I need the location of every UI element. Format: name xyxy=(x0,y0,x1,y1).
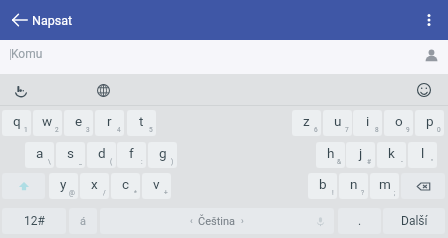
staticText: › xyxy=(241,216,244,227)
button[interactable]: e xyxy=(64,110,93,136)
staticText: ‹ xyxy=(190,216,193,227)
staticText: n xyxy=(350,176,358,192)
staticText: 12# xyxy=(24,214,45,228)
button[interactable]: Diacritics xyxy=(69,208,97,234)
button[interactable]: More options xyxy=(416,7,442,33)
button[interactable]: x xyxy=(80,173,109,199)
staticText: 8 xyxy=(375,126,379,134)
staticText: q xyxy=(13,113,21,129)
staticText: e xyxy=(75,113,83,129)
button[interactable]: w xyxy=(33,110,62,136)
staticText: f xyxy=(129,145,134,161)
button[interactable]: Clipboard xyxy=(10,78,34,102)
staticText: z xyxy=(303,113,310,129)
staticText: " xyxy=(431,158,434,166)
staticText: 1 xyxy=(24,126,28,134)
staticText: / xyxy=(103,189,106,197)
button[interactable]: Další xyxy=(383,208,445,234)
button[interactable]: y xyxy=(49,173,78,199)
staticText: d xyxy=(98,145,106,161)
button[interactable]: c xyxy=(111,173,140,199)
staticText: r xyxy=(107,113,112,129)
button[interactable]: Emoji xyxy=(412,78,436,102)
button[interactable]: m xyxy=(370,173,399,199)
staticText: Napsat xyxy=(32,13,73,28)
button[interactable]: d xyxy=(87,142,116,168)
staticText: c xyxy=(122,176,130,192)
staticText: 4 xyxy=(117,126,121,134)
staticText: . xyxy=(358,214,362,228)
staticText: \ xyxy=(48,158,51,166)
staticText: @ xyxy=(69,189,75,197)
button[interactable]: v xyxy=(142,173,171,199)
staticText: ; xyxy=(394,189,396,197)
button[interactable]: . xyxy=(338,208,381,234)
button[interactable]: a xyxy=(25,142,54,168)
staticText: l xyxy=(421,145,425,161)
staticText: i xyxy=(366,113,370,129)
staticText: t xyxy=(139,113,144,129)
staticText: : xyxy=(141,158,143,166)
button[interactable]: u xyxy=(323,110,352,136)
staticText: y xyxy=(60,176,67,192)
button[interactable]: ‹ xyxy=(100,208,334,234)
button[interactable]: 12# xyxy=(2,208,66,234)
staticText: x xyxy=(91,176,98,192)
staticText: _ xyxy=(79,158,82,166)
button[interactable]: g xyxy=(148,142,177,168)
staticText: s xyxy=(67,145,74,161)
staticText: v xyxy=(153,176,160,192)
button[interactable]: Add contact xyxy=(420,44,442,66)
staticText: w xyxy=(42,113,53,129)
button[interactable]: Language xyxy=(91,78,115,102)
button[interactable]: f xyxy=(117,142,146,168)
button[interactable]: s xyxy=(56,142,85,168)
staticText: 2 xyxy=(55,126,59,134)
staticText: b xyxy=(319,176,327,192)
button[interactable]: o xyxy=(384,110,413,136)
staticText: ! xyxy=(332,189,334,197)
button[interactable]: z xyxy=(292,110,321,136)
button[interactable]: n xyxy=(339,173,368,199)
staticText: m xyxy=(379,176,391,192)
staticText: u xyxy=(334,113,342,129)
staticText: g xyxy=(159,145,167,161)
staticText: - xyxy=(401,158,403,166)
staticText: ? xyxy=(361,189,365,197)
staticText: 7 xyxy=(345,126,349,134)
staticText: * xyxy=(134,189,137,197)
staticText: # xyxy=(367,158,372,166)
button[interactable]: l xyxy=(408,142,437,168)
staticText: p xyxy=(426,113,434,129)
staticText: 5 xyxy=(149,126,153,134)
staticText: k xyxy=(388,145,395,161)
staticText: ) xyxy=(171,158,174,166)
button[interactable]: j xyxy=(346,142,375,168)
staticText: + xyxy=(164,189,168,197)
staticText: Čeština xyxy=(198,215,236,228)
button[interactable]: b xyxy=(308,173,337,199)
button[interactable]: h xyxy=(316,142,345,168)
staticText: h xyxy=(327,145,335,161)
staticText: o xyxy=(395,113,403,129)
button[interactable]: Backspace xyxy=(401,173,445,199)
button[interactable]: r xyxy=(95,110,124,136)
button[interactable]: q xyxy=(2,110,31,136)
staticText: Komu xyxy=(11,47,43,61)
staticText: & xyxy=(337,158,342,166)
staticText: 9 xyxy=(406,126,410,134)
button[interactable]: k xyxy=(377,142,406,168)
staticText: Další xyxy=(401,214,428,228)
staticText: a xyxy=(36,145,44,161)
staticText: 6 xyxy=(314,126,318,134)
button[interactable]: Shift xyxy=(2,173,45,199)
button[interactable]: i xyxy=(353,110,382,136)
button[interactable]: Back xyxy=(7,7,33,33)
staticText: 0 xyxy=(437,126,441,134)
staticText: ( xyxy=(110,158,113,166)
button[interactable]: t xyxy=(127,110,156,136)
staticText: 3 xyxy=(86,126,90,134)
button[interactable]: p xyxy=(415,110,444,136)
staticText: á xyxy=(80,215,86,228)
staticText: j xyxy=(359,145,363,161)
